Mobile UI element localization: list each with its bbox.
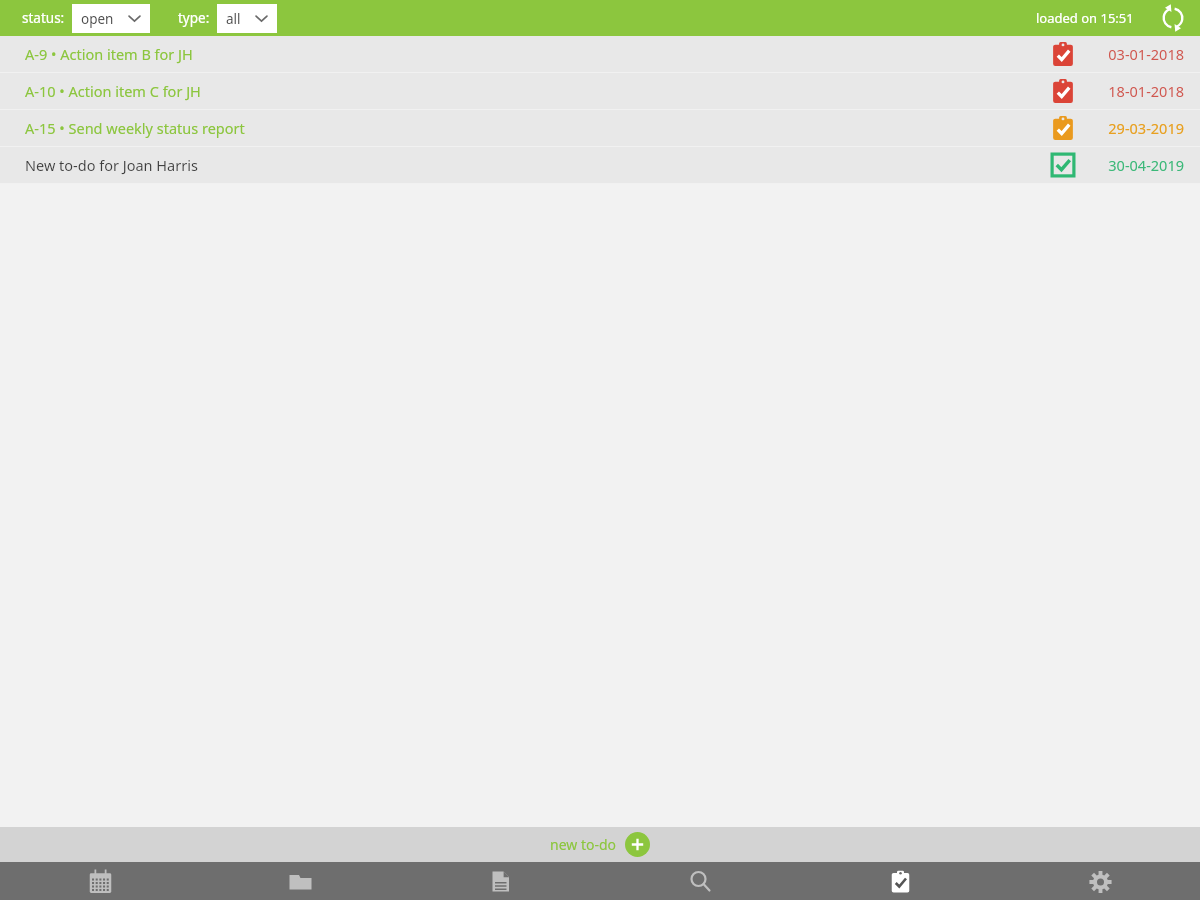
staticText: A-15 • Send weekly status report [25, 118, 245, 138]
button[interactable]: Search [600, 862, 800, 900]
staticText: A-9 • Action item B for JH [25, 44, 193, 64]
staticText: 18-01-2018 [1096, 81, 1184, 101]
staticText: status: [22, 9, 65, 27]
button[interactable]: New to-do for Joan Harris [0, 147, 1200, 183]
staticText: 30-04-2019 [1096, 155, 1184, 175]
staticText: type: [178, 9, 210, 27]
button[interactable]: all [217, 4, 277, 33]
staticText: New to-do for Joan Harris [25, 155, 198, 175]
button[interactable]: Folders [200, 862, 400, 900]
button[interactable]: A-9 • Action item B for JH [0, 36, 1200, 72]
staticText: 03-01-2018 [1096, 44, 1184, 64]
button[interactable]: A-15 • Send weekly status report [0, 110, 1200, 146]
staticText: 29-03-2019 [1096, 118, 1184, 138]
button[interactable]: Refresh [1156, 1, 1190, 35]
staticText: all [226, 10, 241, 28]
button[interactable]: A-10 • Action item C for JH [0, 73, 1200, 109]
button[interactable]: Documents [400, 862, 600, 900]
staticText: A-10 • Action item C for JH [25, 81, 201, 101]
staticText: new to-do [550, 835, 617, 854]
staticText: open [81, 10, 114, 28]
button[interactable]: Settings [1000, 862, 1200, 900]
button[interactable]: To-dos [800, 862, 1000, 900]
button[interactable]: new to-do [544, 830, 656, 859]
button[interactable]: Calendar [0, 862, 200, 900]
button[interactable]: open [72, 4, 150, 33]
staticText: loaded on 15:51 [1036, 9, 1134, 27]
